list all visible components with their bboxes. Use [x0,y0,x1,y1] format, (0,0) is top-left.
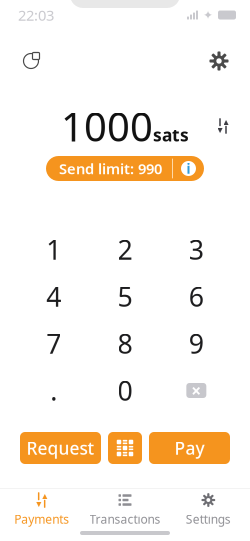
button[interactable]: Settings [202,44,236,78]
staticText: ▼ [36,500,41,508]
staticText: 3 [189,232,204,267]
staticText: 8 [117,326,132,361]
button[interactable]: 5 [89,273,161,320]
button[interactable]: 0 [89,367,161,414]
staticText: 2 [117,232,132,267]
staticText: Pay [174,436,204,459]
button[interactable]: ▼ [0,489,83,531]
button[interactable]: 4 [18,273,89,320]
staticText: i [186,160,190,177]
button[interactable]: 8 [89,320,161,367]
staticText: 1000 [61,99,153,152]
staticText: Send limit: 990 [59,159,162,178]
staticText: 1 [46,232,61,267]
button[interactable]: Request [20,432,101,464]
button[interactable]: 6 [161,273,232,320]
button[interactable]: Delete [161,367,232,414]
button[interactable]: Scan QR code [108,432,142,464]
button[interactable]: 3 [161,226,232,273]
staticText: ▲ [223,118,228,126]
button[interactable]: Send limit: 990 [46,156,204,181]
staticText: Settings [186,511,231,527]
staticText: sats [153,123,189,146]
staticText: 4 [46,279,61,314]
staticText: . [50,373,57,408]
staticText: Payments [14,511,69,527]
button[interactable]: 1 [18,226,89,273]
staticText: 6 [189,279,204,314]
button[interactable]: Switch currency [208,113,238,139]
button[interactable]: 2 [89,226,161,273]
staticText: 0 [117,373,132,408]
button[interactable]: Balance chart [14,44,48,78]
staticText: ▼ [217,126,222,134]
button[interactable]: Settings [167,489,250,531]
staticText: × [191,379,201,402]
staticText: ▲ [42,492,47,500]
button[interactable]: 9 [161,320,232,367]
staticText: 5 [117,279,132,314]
staticText: ✦ [203,8,213,22]
staticText: Transactions [89,511,160,527]
button[interactable]: Transactions [83,489,167,531]
button[interactable]: Pay [149,432,230,464]
staticText: 9 [189,326,204,361]
staticText: 7 [46,326,61,361]
button[interactable]: 7 [18,320,89,367]
staticText: 22:03 [18,5,54,25]
button[interactable]: . [18,367,89,414]
staticText: Request [26,436,94,459]
